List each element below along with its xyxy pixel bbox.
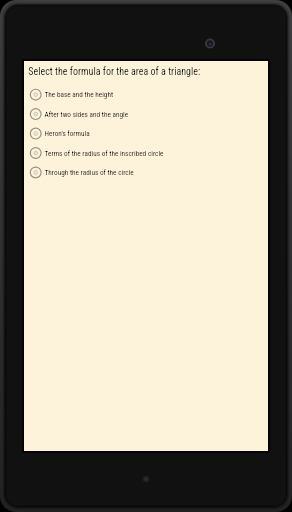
staticText: The base and the height <box>45 90 114 98</box>
button[interactable]: Terms of the radius of the inscribed cir… <box>24 146 268 161</box>
button[interactable]: Heron's formula <box>24 126 268 141</box>
button[interactable]: After two sides and the angle <box>24 107 268 122</box>
button[interactable]: The base and the height <box>24 87 268 102</box>
button[interactable]: Through the radius of the circle <box>24 165 268 180</box>
staticText: After two sides and the angle <box>45 110 129 118</box>
staticText: Heron's formula <box>45 129 91 137</box>
staticText: Select the formula for the area of a tri… <box>28 66 201 78</box>
staticText: Through the radius of the circle <box>45 168 135 176</box>
staticText: Terms of the radius of the inscribed cir… <box>45 149 164 157</box>
